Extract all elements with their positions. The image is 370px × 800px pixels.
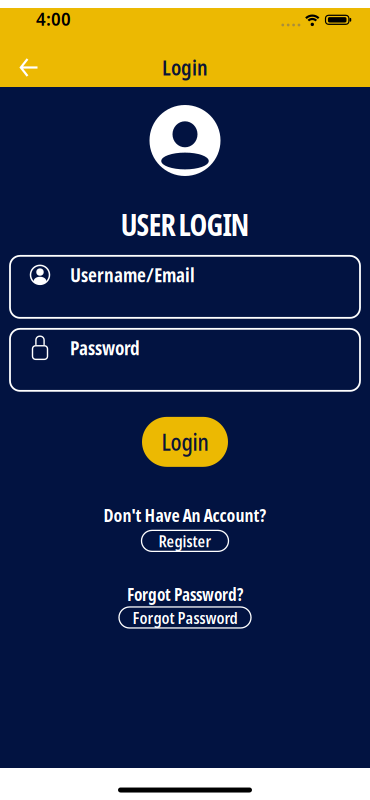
button[interactable]: Register [141,530,228,551]
button[interactable]: Password [0,329,370,391]
staticText: Password [70,335,140,361]
button[interactable] [0,59,37,76]
staticText: Don't Have An Account? [103,503,266,527]
staticText: Login [161,426,208,457]
staticText: 4:00 [36,6,71,31]
staticText: Register [158,529,211,552]
staticText: Forgot Password? [127,582,243,606]
button[interactable]: Login [142,417,228,467]
staticText: Login [162,53,208,81]
button[interactable]: Forgot Password [119,607,251,628]
staticText: USER LOGIN [120,204,249,245]
button[interactable]: Username/Email [0,256,370,318]
staticText: Username/Email [70,262,195,288]
staticText: Forgot Password [132,606,237,629]
